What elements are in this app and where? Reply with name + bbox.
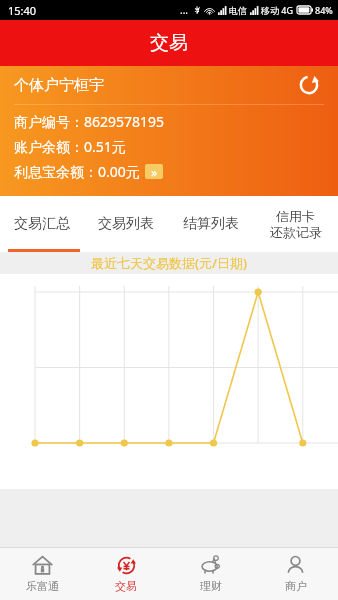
- staticText: 商户编号：8629578195: [14, 112, 165, 131]
- staticText: 理财: [200, 579, 222, 593]
- staticText: 移动 4G: [261, 4, 294, 16]
- staticText: 交易汇总: [14, 215, 70, 233]
- button[interactable]: 理财: [168, 548, 253, 600]
- staticText: 结算列表: [183, 215, 239, 233]
- staticText: 账户余额：0.51元: [14, 137, 126, 156]
- button[interactable]: 刷新: [294, 70, 324, 100]
- button[interactable]: 交易汇总: [0, 196, 84, 252]
- staticText: 最近七天交易数据(元/日期): [91, 254, 248, 272]
- staticText: 商户: [285, 579, 307, 593]
- button[interactable]: 乐富通: [0, 548, 84, 600]
- staticText: 乐富通: [26, 579, 59, 593]
- button[interactable]: 交易列表: [84, 196, 168, 252]
- staticText: 交易: [150, 31, 188, 55]
- button[interactable]: 交易: [84, 548, 168, 600]
- staticText: 利息宝余额：0.00元: [14, 162, 140, 181]
- button[interactable]: 信用卡: [253, 196, 338, 252]
- button[interactable]: 商户: [253, 548, 338, 600]
- button[interactable]: 结算列表: [168, 196, 253, 252]
- staticText: »: [151, 164, 158, 179]
- staticText: 交易列表: [98, 215, 154, 233]
- staticText: 还款记录: [270, 224, 322, 240]
- staticText: 个体户宁桓宇: [14, 76, 294, 95]
- staticText: 交易: [115, 579, 137, 593]
- staticText: 信用卡: [276, 208, 315, 224]
- staticText: 电信: [229, 5, 247, 16]
- staticText: 84%: [315, 4, 333, 16]
- staticText: 15:40: [8, 3, 37, 18]
- staticText: ...: [180, 3, 189, 17]
- button[interactable]: 查看利息宝: [145, 164, 163, 179]
